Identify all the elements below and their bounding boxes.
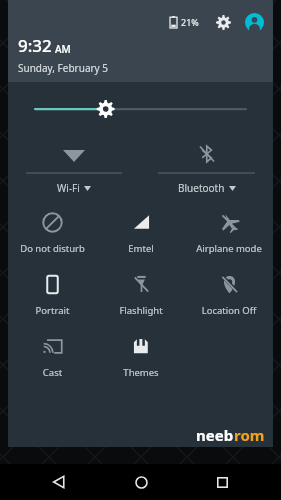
button[interactable]: Emtel xyxy=(97,202,185,264)
staticText: Do not disturb xyxy=(8,242,97,255)
staticText: Themes xyxy=(97,366,185,379)
staticText: neeb xyxy=(196,425,234,445)
staticText: Emtel xyxy=(97,242,185,255)
staticText: Location Off xyxy=(185,304,273,317)
button[interactable]: Brightness xyxy=(8,82,273,134)
button[interactable]: Settings xyxy=(212,11,234,33)
staticText: Airplane mode xyxy=(185,242,273,255)
button[interactable]: Home xyxy=(118,464,164,500)
button[interactable]: Bluetooth xyxy=(140,134,273,202)
staticText: rom xyxy=(234,425,265,445)
button[interactable]: Back xyxy=(36,464,82,500)
button[interactable]: Do not disturb xyxy=(8,202,97,264)
button[interactable]: Recents xyxy=(199,464,245,500)
button[interactable]: Themes xyxy=(97,326,185,388)
button[interactable]: User xyxy=(243,11,265,33)
staticText: AM xyxy=(55,42,71,56)
staticText: Portrait xyxy=(8,304,97,317)
staticText: Flashlight xyxy=(97,304,185,317)
staticText: Cast xyxy=(8,366,97,379)
staticText: 9:32 xyxy=(18,34,52,57)
button[interactable]: Wi-Fi xyxy=(8,134,140,202)
button[interactable]: Flashlight xyxy=(97,264,185,326)
button[interactable]: Location Off xyxy=(185,264,273,326)
staticText: Bluetooth xyxy=(178,181,225,195)
staticText: 21% xyxy=(181,16,199,28)
staticText: Wi-Fi xyxy=(57,181,80,195)
button[interactable]: Cast xyxy=(8,326,97,388)
button[interactable]: Portrait xyxy=(8,264,97,326)
button[interactable]: Airplane mode xyxy=(185,202,273,264)
staticText: Sunday, February 5 xyxy=(18,61,109,75)
